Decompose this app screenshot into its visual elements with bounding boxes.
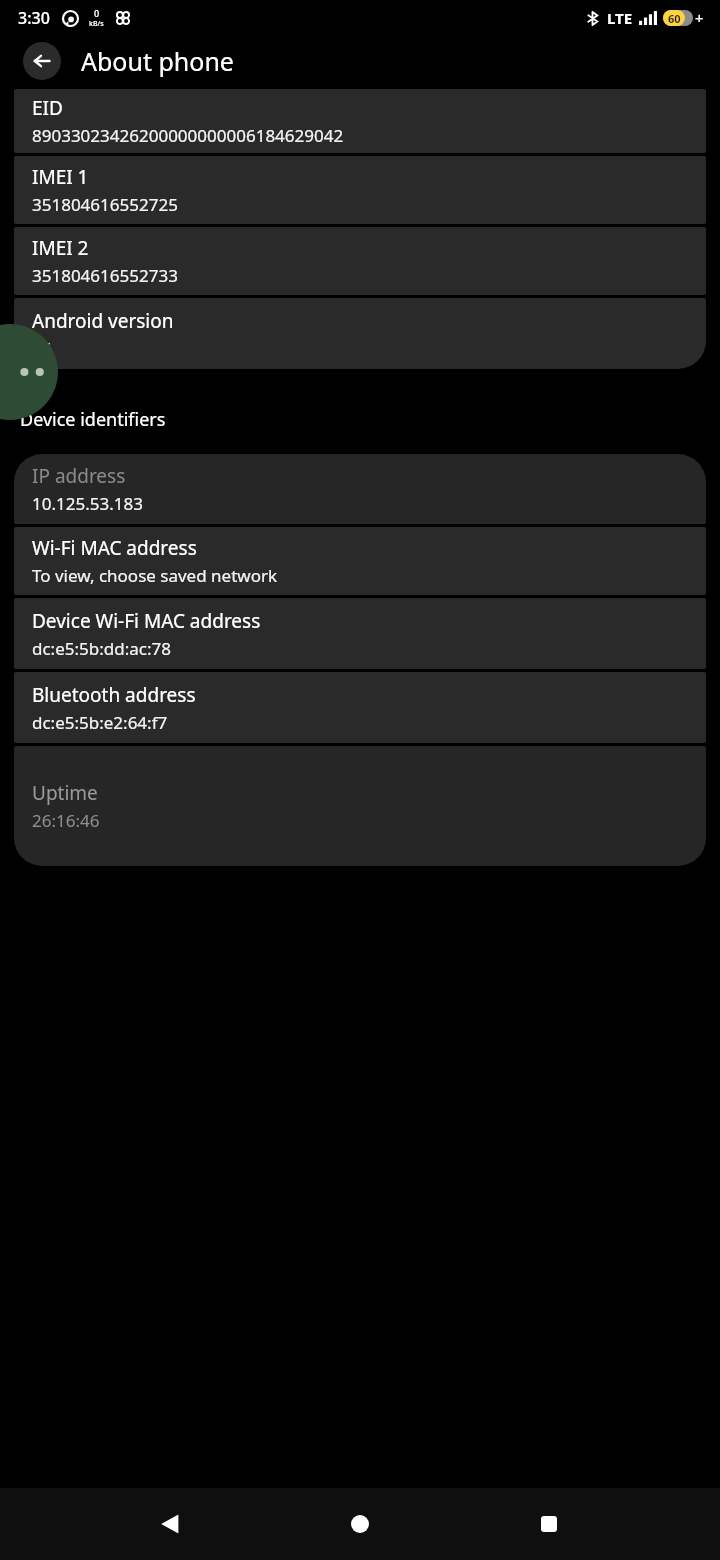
button[interactable]: Back xyxy=(146,1500,194,1548)
staticText: dc:e5:5b:e2:64:f7 xyxy=(32,711,168,734)
staticText: To view, choose saved network xyxy=(32,564,278,587)
staticText: Bluetooth address xyxy=(32,682,196,708)
staticText: 0 xyxy=(94,7,100,19)
button[interactable]: Android version xyxy=(14,298,706,369)
staticText: LTE xyxy=(607,8,633,28)
staticText: About phone xyxy=(81,44,234,78)
staticText: EID xyxy=(32,95,63,121)
staticText: 26:16:46 xyxy=(32,809,100,832)
staticText: Device identifiers xyxy=(20,407,166,432)
button[interactable]: Device Wi-Fi MAC address xyxy=(14,598,706,669)
staticText: Wi-Fi MAC address xyxy=(32,535,197,561)
staticText: IMEI 1 xyxy=(32,164,89,190)
staticText: 89033023426200000000006184629042 xyxy=(32,124,344,147)
button[interactable]: Uptime xyxy=(14,746,706,866)
button[interactable]: Bluetooth address xyxy=(14,672,706,743)
staticText: 10.125.53.183 xyxy=(32,492,143,515)
staticText: dc:e5:5b:dd:ac:78 xyxy=(32,637,171,660)
staticText: + xyxy=(695,8,704,28)
staticText: 351804616552733 xyxy=(32,264,178,287)
staticText: 60 xyxy=(668,11,681,26)
staticText: Uptime xyxy=(32,780,98,806)
staticText: Device Wi-Fi MAC address xyxy=(32,608,261,634)
staticText: kB/s xyxy=(89,19,104,29)
button[interactable]: IMEI 1 xyxy=(14,156,706,224)
button[interactable]: Back xyxy=(23,42,61,80)
button[interactable]: IMEI 2 xyxy=(14,227,706,295)
staticText: 16 xyxy=(32,337,52,360)
staticText: Android version xyxy=(32,308,174,334)
button[interactable]: Chat bubble xyxy=(0,324,58,420)
button[interactable]: Wi-Fi MAC address xyxy=(14,527,706,595)
button[interactable]: Home xyxy=(336,1500,384,1548)
staticText: IP address xyxy=(32,463,126,489)
button[interactable]: EID xyxy=(14,89,706,153)
button[interactable]: IP address xyxy=(14,454,706,524)
staticText: 3:30 xyxy=(18,7,50,29)
button[interactable]: Recent apps xyxy=(525,1500,573,1548)
staticText: 351804616552725 xyxy=(32,193,178,216)
staticText: IMEI 2 xyxy=(32,235,89,261)
